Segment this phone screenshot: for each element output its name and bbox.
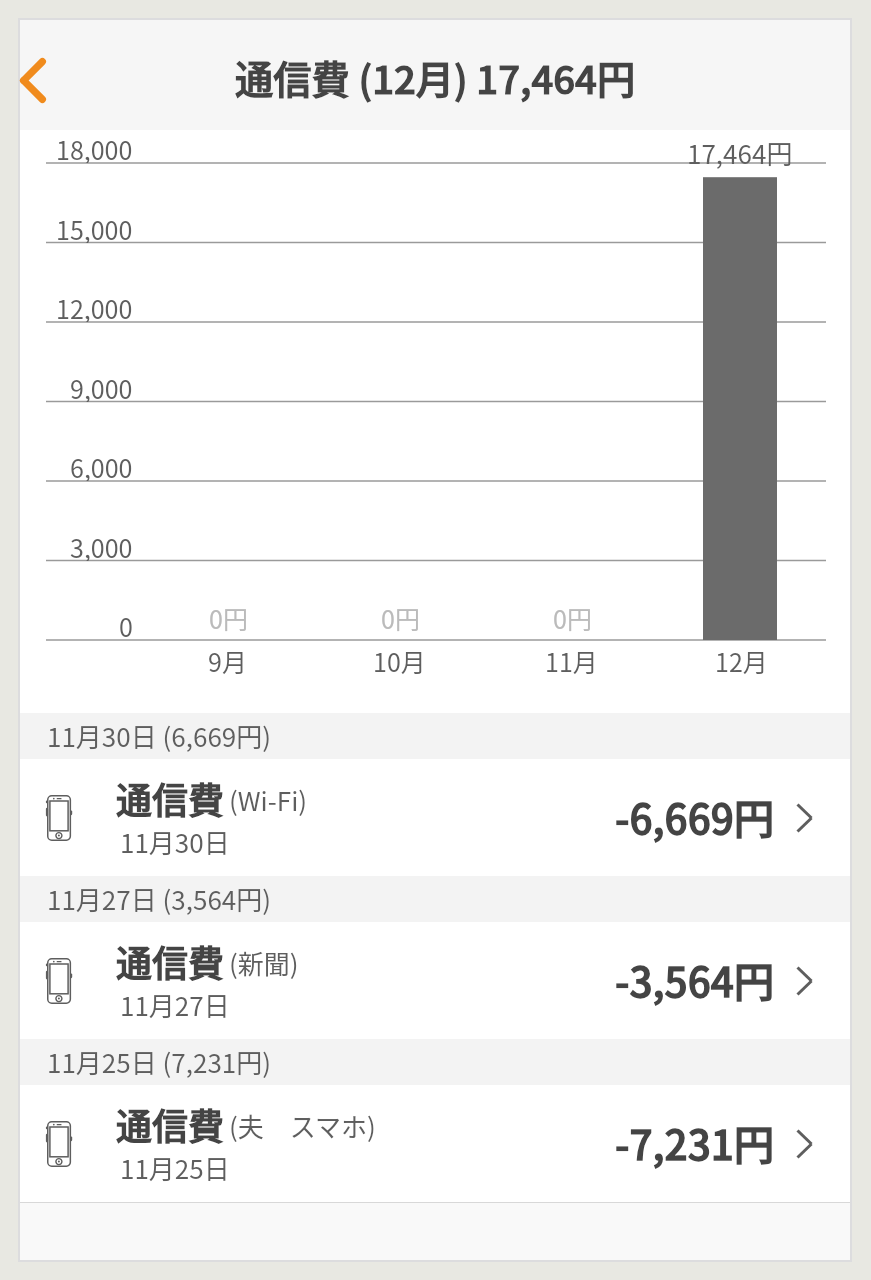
button[interactable]: Back — [2, 49, 64, 111]
staticText: 11月 — [545, 643, 598, 679]
staticText: -6,669円 — [615, 787, 775, 846]
staticText: 12,000 — [56, 290, 133, 322]
staticText: (夫 スマホ) — [229, 1107, 376, 1145]
staticText: -3,564円 — [615, 950, 775, 1009]
staticText: 18,000 — [56, 131, 133, 163]
staticText: 11月30日 — [120, 823, 230, 861]
staticText: (新聞) — [229, 944, 299, 982]
staticText: 11月27日 — [120, 986, 230, 1024]
staticText: 12月 — [715, 643, 768, 679]
staticText: 9月 — [208, 643, 247, 679]
staticText: 通信費 — [116, 1098, 225, 1150]
staticText: (Wi-Fi) — [229, 781, 308, 819]
staticText: 0円 — [553, 600, 592, 636]
staticText: 3,000 — [70, 529, 133, 561]
staticText: 通信費 (12月) 17,464円 — [235, 50, 636, 105]
staticText: 通信費 — [116, 935, 225, 987]
staticText: -7,231円 — [615, 1113, 775, 1172]
staticText: 10月 — [373, 643, 426, 679]
staticText: 6,000 — [70, 449, 133, 481]
button[interactable]: 通信費 — [20, 759, 850, 876]
staticText: 11月27日 (3,564円) — [47, 880, 272, 918]
staticText: 0円 — [209, 600, 248, 636]
staticText: 11月25日 — [120, 1149, 230, 1187]
staticText: 0 — [119, 608, 133, 640]
staticText: 15,000 — [56, 211, 133, 243]
staticText: 17,464円 — [687, 134, 793, 172]
button[interactable]: 通信費 — [20, 922, 850, 1039]
button[interactable]: 通信費 — [20, 1085, 850, 1202]
staticText: 11月30日 (6,669円) — [47, 717, 272, 755]
staticText: 0円 — [381, 600, 420, 636]
staticText: 9,000 — [70, 370, 133, 402]
staticText: 11月25日 (7,231円) — [47, 1043, 272, 1081]
staticText: 通信費 — [116, 772, 225, 824]
